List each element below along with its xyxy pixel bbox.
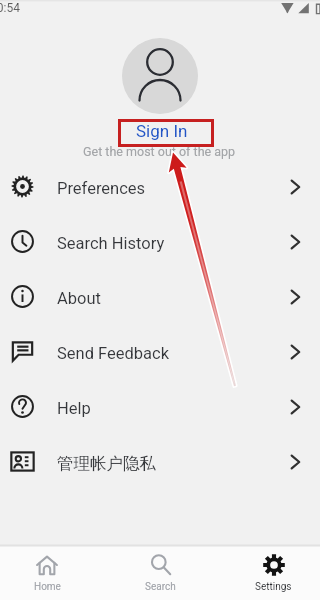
button[interactable]: Settings [217, 547, 320, 600]
staticText: Preferences [57, 179, 146, 198]
staticText: Get the most out of the app [83, 144, 236, 159]
staticText: Sign In [136, 121, 188, 141]
button[interactable]: Sign In [114, 117, 209, 144]
staticText: Home [34, 581, 61, 593]
button[interactable]: Send Feedback [0, 324, 320, 379]
button[interactable]: Home [0, 547, 104, 600]
button[interactable]: Search History [0, 214, 320, 269]
button[interactable]: 管理帐户隐私 [0, 434, 320, 489]
button[interactable]: About [0, 269, 320, 324]
button[interactable]: Preferences [0, 159, 320, 214]
button[interactable]: Profile photo [122, 38, 198, 114]
staticText: Send Feedback [57, 344, 170, 363]
button[interactable]: Help [0, 379, 320, 434]
staticText: About [57, 289, 101, 308]
staticText: 管理帐户隐私 [57, 453, 156, 474]
staticText: 10:54 [0, 1, 20, 15]
button[interactable]: Search [104, 547, 217, 600]
staticText: Help [57, 399, 91, 418]
staticText: Settings [255, 581, 292, 593]
staticText: Search History [57, 234, 165, 253]
staticText: Search [145, 581, 176, 593]
